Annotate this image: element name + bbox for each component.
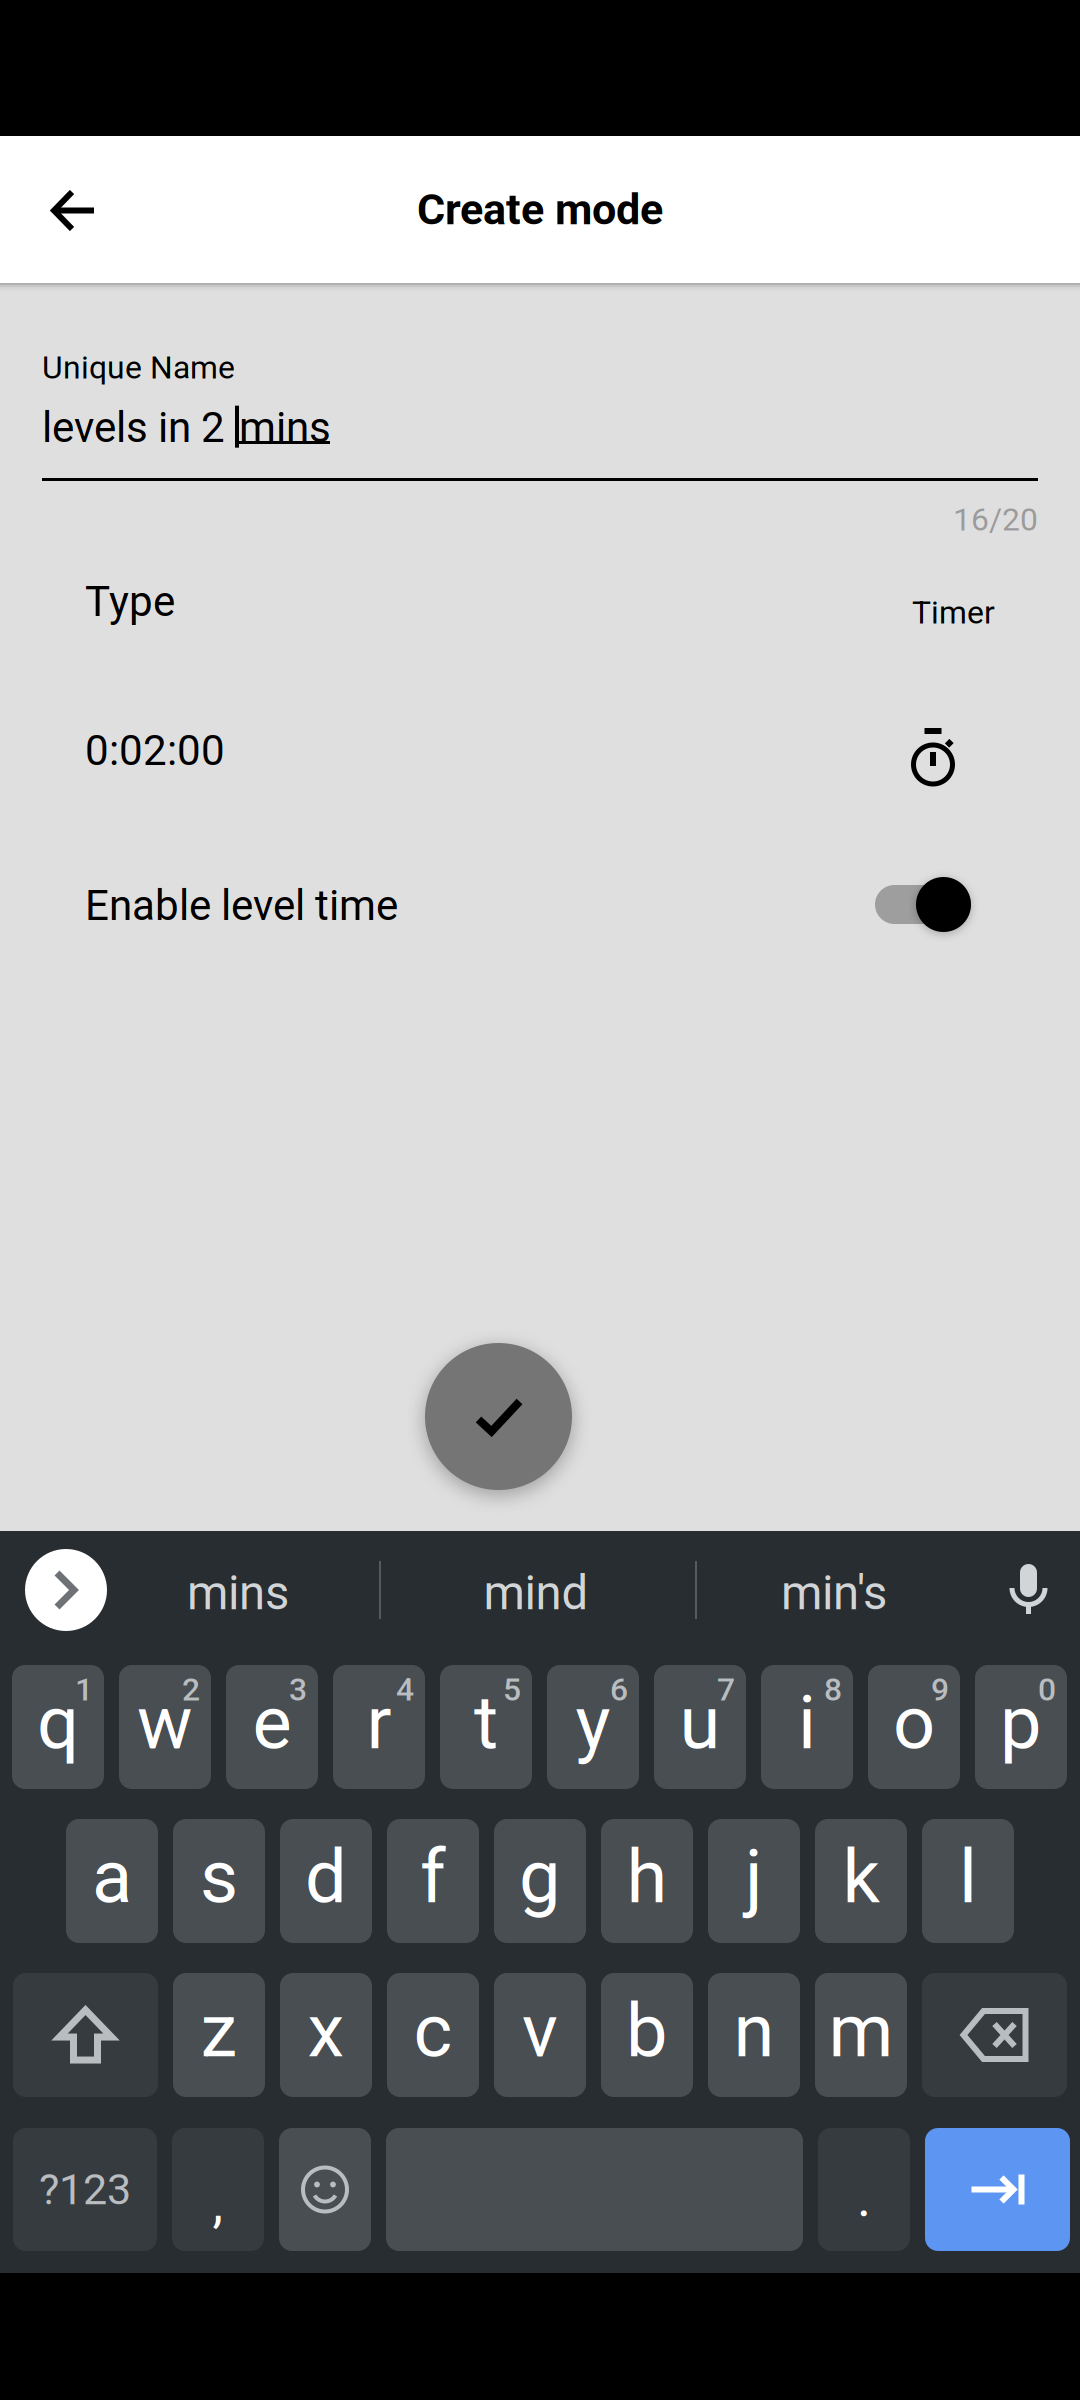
button[interactable]: Period [818,2128,910,2251]
button[interactable]: a [66,1819,158,1943]
staticText: g [519,1834,561,1920]
button[interactable]: s [173,1819,265,1943]
staticText: v [522,1988,558,2074]
staticText: mind [483,1565,588,1621]
button[interactable]: Edit duration [893,717,973,797]
staticText: n [733,1988,774,2074]
button[interactable]: u [654,1665,746,1789]
button[interactable]: d [280,1819,372,1943]
staticText: 9 [931,1671,949,1708]
staticText: o [893,1680,935,1766]
button[interactable]: Emoji [279,2128,371,2251]
button[interactable]: f [387,1819,479,1943]
staticText: 8 [824,1671,842,1708]
button[interactable]: Enter [925,2128,1070,2251]
button[interactable]: Back [0,136,148,283]
staticText: l [959,1834,977,1920]
button[interactable]: e [226,1665,318,1789]
staticText: 2 [182,1671,200,1708]
staticText: c [413,1988,452,2074]
staticText: y [575,1680,610,1766]
button[interactable]: y [547,1665,639,1789]
staticText: Timer [912,594,995,631]
button[interactable]: p [975,1665,1067,1789]
staticText: s [200,1834,238,1920]
button[interactable]: Backspace [922,1973,1067,2097]
button[interactable]: c [387,1973,479,2097]
staticText: 1 [75,1671,93,1708]
staticText: 0:02:00 [85,726,225,775]
staticText: z [200,1988,237,2074]
staticText: x [307,1988,344,2074]
staticText: Enable level time [85,881,398,930]
button[interactable]: b [601,1973,693,2097]
button[interactable]: m [815,1973,907,2097]
button[interactable]: g [494,1819,586,1943]
button[interactable]: q [12,1665,104,1789]
staticText: 4 [396,1671,414,1708]
staticText: 5 [503,1671,521,1708]
staticText: b [626,1988,668,2074]
button[interactable]: mind [378,1552,694,1634]
button[interactable]: Enable level time [875,877,971,932]
button[interactable]: k [815,1819,907,1943]
button[interactable]: Save mode [425,1343,572,1490]
button[interactable]: Type [85,283,995,363]
button[interactable]: o [868,1665,960,1789]
button[interactable]: Symbols [13,2128,157,2251]
button[interactable]: v [494,1973,586,2097]
staticText: 16/20 [953,501,1038,538]
staticText: p [1000,1680,1042,1766]
staticText: 0 [1038,1671,1056,1708]
button[interactable]: x [280,1973,372,2097]
staticText: j [745,1834,763,1920]
button[interactable]: t [440,1665,532,1789]
staticText: Type [85,577,175,626]
staticText: w [137,1680,193,1766]
staticText: m [828,1988,893,2074]
staticText: t [474,1680,498,1766]
button[interactable]: Comma [172,2128,264,2251]
button[interactable]: i [761,1665,853,1789]
staticText: q [37,1680,79,1766]
staticText: i [798,1680,816,1766]
staticText: 7 [717,1671,735,1708]
staticText: f [420,1834,446,1920]
staticText: d [305,1834,347,1920]
staticText: k [842,1834,879,1920]
staticText: , [212,2172,223,2235]
button[interactable]: z [173,1973,265,2097]
staticText: ?123 [39,2164,131,2215]
staticText: levels in 2 [42,403,235,452]
staticText: mins [187,1565,289,1621]
staticText: r [366,1680,391,1766]
staticText: Unique Name [42,349,235,386]
button[interactable]: w [119,1665,211,1789]
button[interactable]: Shift [13,1973,158,2097]
staticText: 6 [610,1671,628,1708]
staticText: a [92,1834,132,1920]
button[interactable]: min's [694,1552,974,1634]
staticText: min's [781,1565,887,1621]
button[interactable]: n [708,1973,800,2097]
staticText: u [679,1680,720,1766]
button[interactable]: r [333,1665,425,1789]
staticText: . [857,2166,871,2229]
staticText: 3 [289,1671,307,1708]
button[interactable]: h [601,1819,693,1943]
staticText: Create mode [417,184,663,235]
button[interactable]: Voice input [986,1549,1070,1631]
button[interactable]: l [922,1819,1014,1943]
staticText: mins [239,403,331,452]
staticText: h [626,1834,667,1920]
button[interactable]: mins [120,1552,356,1634]
staticText: e [252,1680,291,1766]
button[interactable]: j [708,1819,800,1943]
button[interactable]: More suggestions [25,1549,107,1631]
